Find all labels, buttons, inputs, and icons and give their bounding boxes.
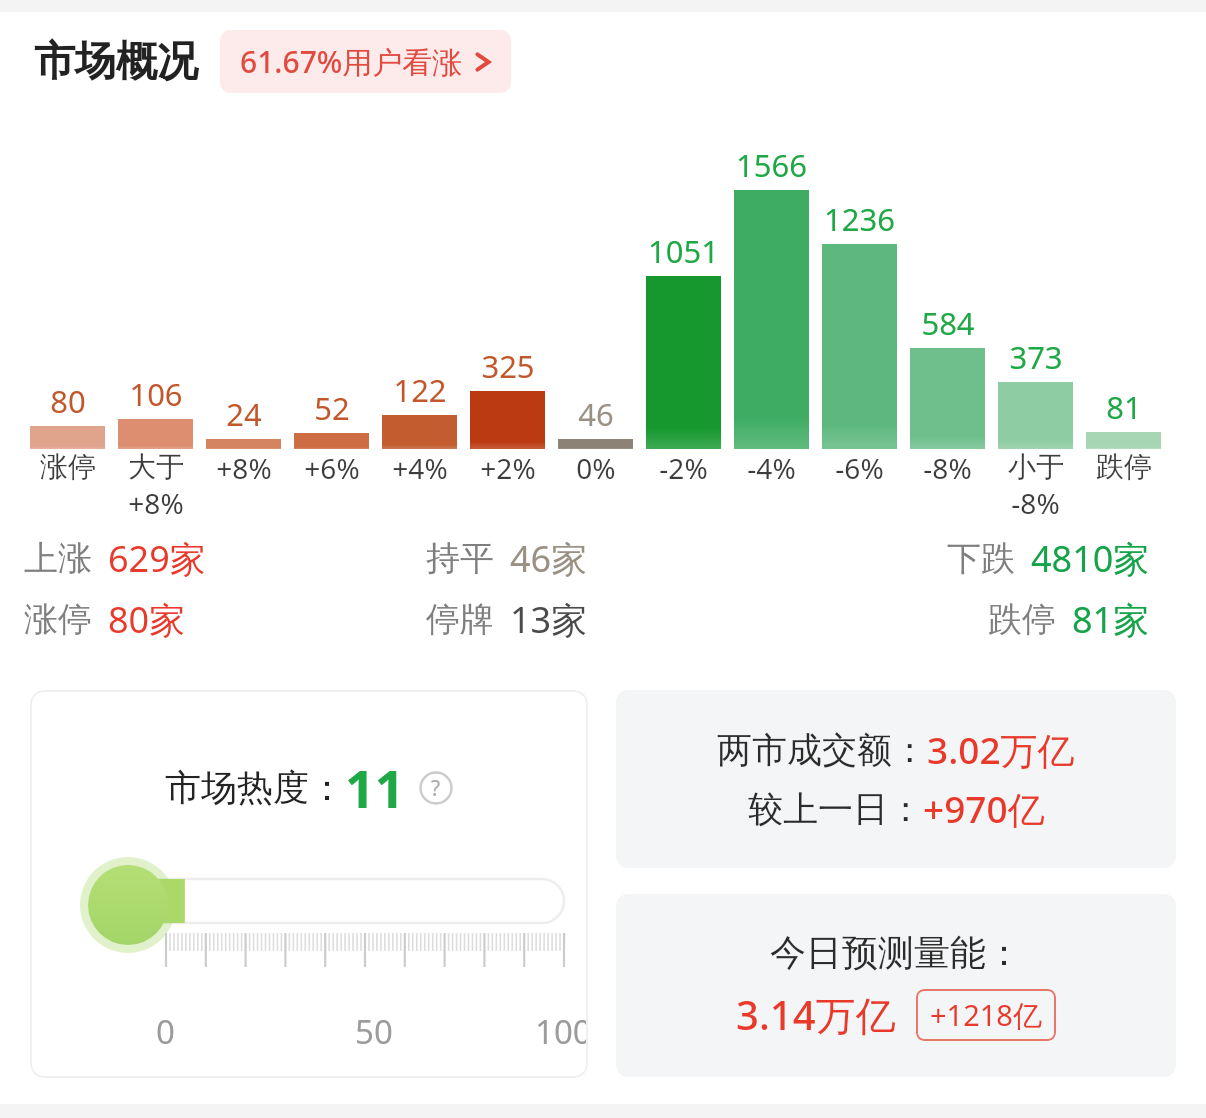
button[interactable] [998,382,1073,449]
staticText: 46 [578,393,614,435]
staticText: 1236 [824,198,895,240]
staticText: 629家 [108,534,206,583]
staticText: 3.14万亿 [736,987,896,1042]
staticText: 584 [921,302,975,344]
staticText: 今日预测量能： [770,930,1022,975]
staticText: 停牌 [426,598,494,641]
staticText: +4% [392,449,448,487]
button[interactable]: 61.67%用户看涨 [220,30,511,93]
button[interactable]: Market heat gauge, 11 of 100 [30,857,588,1007]
staticText: -2% [659,449,708,487]
staticText: 122 [393,369,447,411]
staticText: 4810家 [1031,534,1150,583]
button[interactable] [822,244,897,449]
staticText: 80 [50,380,86,422]
button[interactable] [30,426,105,449]
button[interactable] [646,276,721,449]
staticText: +2% [480,449,536,487]
staticText: 100 [535,1009,588,1054]
staticText: -8% [923,449,972,487]
staticText: 80家 [108,595,186,644]
staticText: 跌停 [1096,449,1152,484]
staticText: 市场概况 [34,36,198,88]
staticText: 11 [345,752,405,823]
staticText: 13家 [510,595,588,644]
staticText: -6% [835,449,884,487]
button[interactable] [910,348,985,449]
staticText: 上涨 [24,537,92,580]
staticText: +6% [304,449,360,487]
staticText: -8% [1011,484,1060,522]
staticText: +8% [216,449,272,487]
button[interactable]: 两市成交额： [616,690,1176,868]
staticText: 373 [1009,336,1063,378]
button[interactable] [558,439,633,449]
staticText: 较上一日： [748,787,923,831]
staticText: 52 [314,387,350,429]
button[interactable] [206,439,281,449]
staticText: 涨停 [40,449,96,484]
staticText: 106 [129,373,183,415]
staticText: 小于 [1008,449,1064,484]
staticText: +8% [128,484,184,522]
staticText: 跌停 [988,598,1056,641]
staticText: 0 [156,1009,175,1054]
staticText: 持平 [426,537,494,580]
staticText: 3.02万亿 [927,724,1075,775]
staticText: ? [431,774,441,803]
staticText: 325 [481,345,535,387]
staticText: 50 [355,1009,393,1054]
button[interactable]: Help: what is market heat [419,771,453,805]
staticText: +970亿 [923,783,1045,834]
button[interactable] [382,415,457,449]
staticText: 46家 [510,534,588,583]
staticText: 下跌 [947,537,1015,580]
button[interactable] [734,190,809,449]
button[interactable]: 今日预测量能： [616,894,1176,1077]
staticText: +1218亿 [930,995,1042,1035]
staticText: 1566 [736,144,807,186]
staticText: 0% [576,449,616,487]
button[interactable] [118,419,193,449]
staticText: 市场热度： [165,765,345,810]
staticText: 1051 [648,230,719,272]
staticText: 两市成交额： [717,728,927,772]
staticText: 81家 [1072,595,1150,644]
staticText: 81 [1106,386,1142,428]
button[interactable] [294,433,369,449]
staticText: 24 [226,393,262,435]
staticText: 61.67%用户看涨 [240,41,463,82]
button[interactable] [470,391,545,449]
staticText: -4% [747,449,796,487]
staticText: 大于 [128,449,184,484]
button[interactable]: 市场热度： [30,690,588,1078]
staticText: 涨停 [24,598,92,641]
